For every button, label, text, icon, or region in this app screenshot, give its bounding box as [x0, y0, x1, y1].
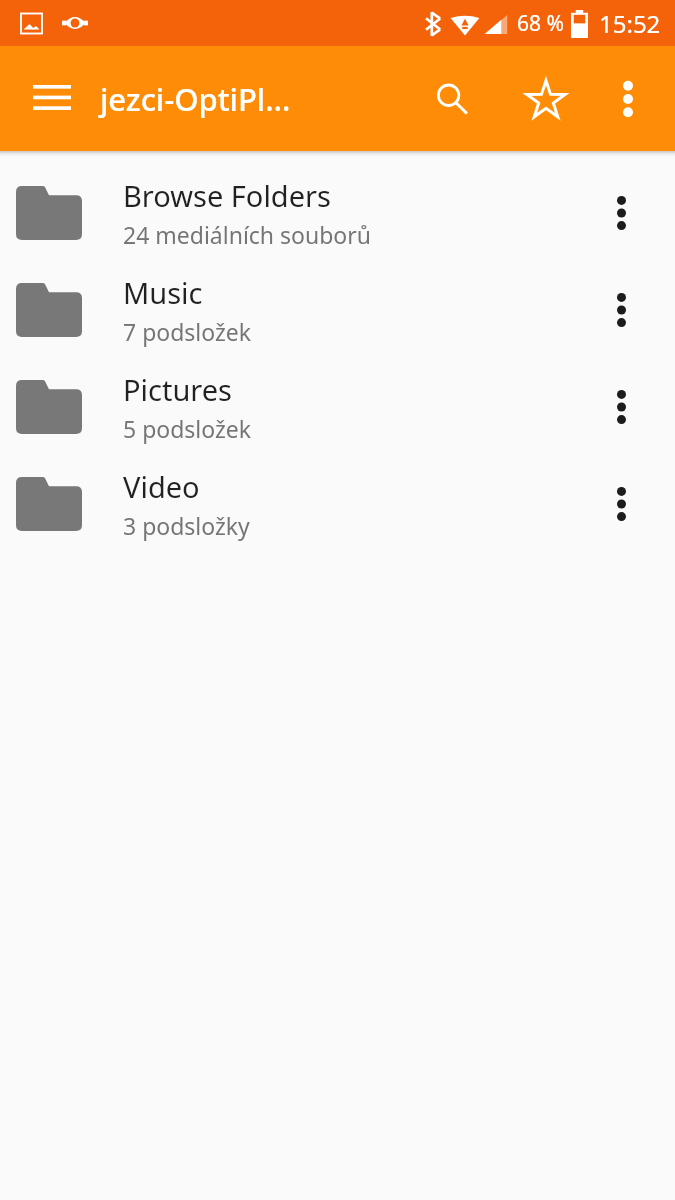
- staticText: Browse Folders: [123, 176, 331, 215]
- staticText: 15:52: [599, 7, 661, 40]
- staticText: 24 mediálních souborů: [123, 219, 371, 250]
- button[interactable]: Open navigation drawer: [18, 65, 86, 133]
- staticText: Music: [123, 273, 203, 312]
- button[interactable]: Search: [421, 68, 483, 130]
- button[interactable]: More options for Pictures: [585, 371, 657, 443]
- button[interactable]: Music: [0, 261, 675, 358]
- button[interactable]: Browse Folders: [0, 164, 675, 261]
- staticText: Video: [123, 467, 200, 506]
- button[interactable]: Add to favourites: [515, 68, 577, 130]
- staticText: 5 podsložek: [123, 413, 252, 444]
- staticText: jezci-OptiPl…: [100, 78, 421, 120]
- button[interactable]: More options: [597, 68, 659, 130]
- button[interactable]: More options for Browse Folders: [585, 177, 657, 249]
- staticText: Pictures: [123, 370, 232, 409]
- button[interactable]: Video: [0, 455, 675, 552]
- button[interactable]: More options for Video: [585, 468, 657, 540]
- staticText: 7 podsložek: [123, 316, 252, 347]
- staticText: 68 %: [517, 9, 564, 38]
- button[interactable]: Pictures: [0, 358, 675, 455]
- staticText: 3 podsložky: [123, 510, 250, 541]
- button[interactable]: More options for Music: [585, 274, 657, 346]
